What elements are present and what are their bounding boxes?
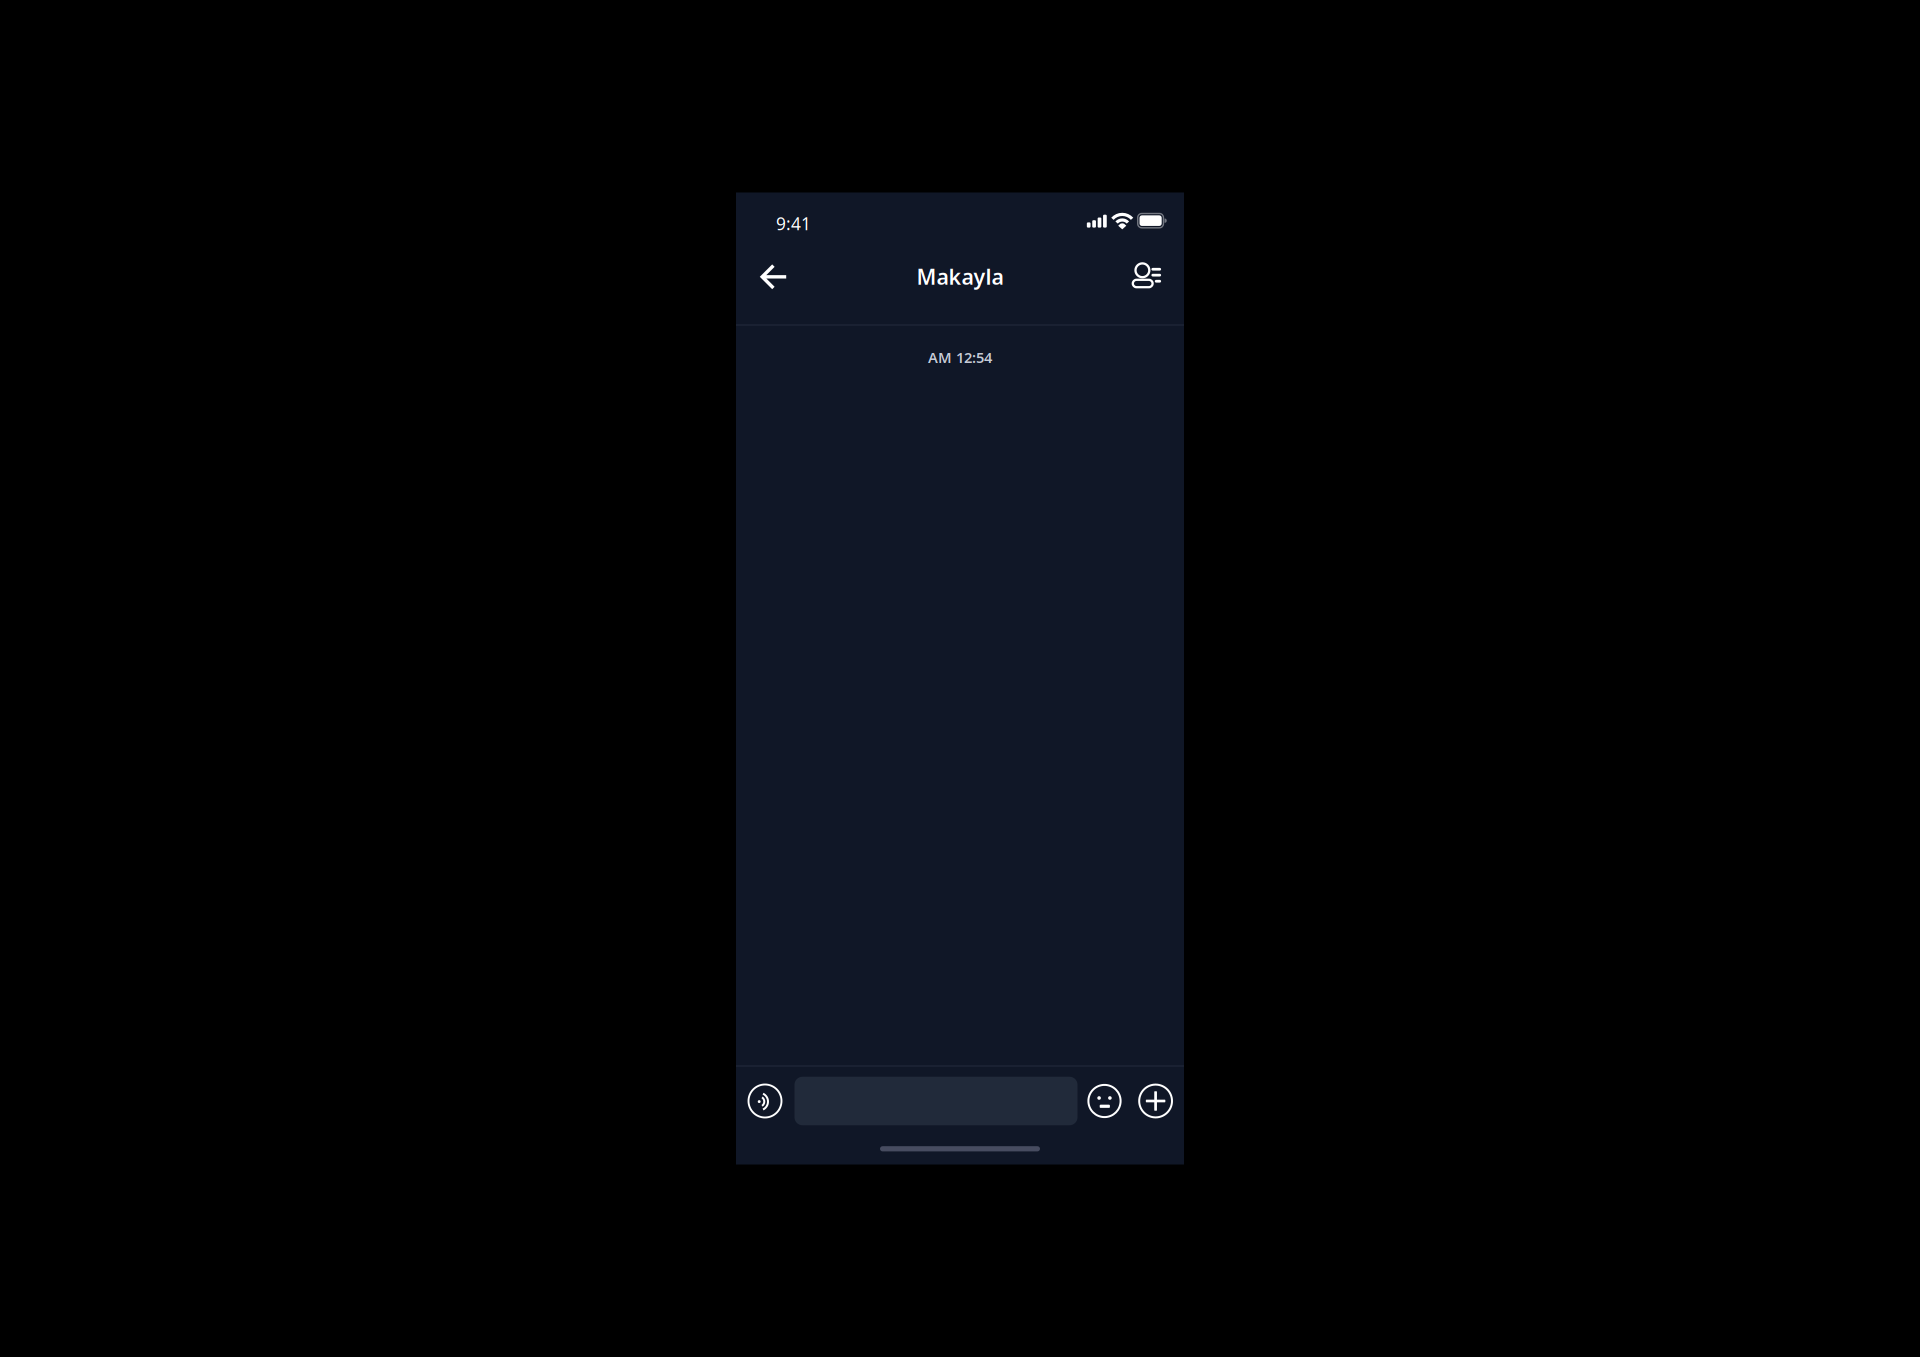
staticText: 9:41 — [776, 212, 811, 235]
button[interactable]: More options — [1133, 1076, 1179, 1126]
staticText: Makayla — [916, 262, 1003, 291]
button[interactable]: Emoji — [1081, 1076, 1127, 1126]
staticText: AM 12:54 — [928, 347, 992, 367]
button[interactable]: Contact info — [1122, 250, 1172, 300]
button[interactable]: Record voice message — [742, 1076, 788, 1126]
button[interactable]: Back — [749, 252, 799, 302]
